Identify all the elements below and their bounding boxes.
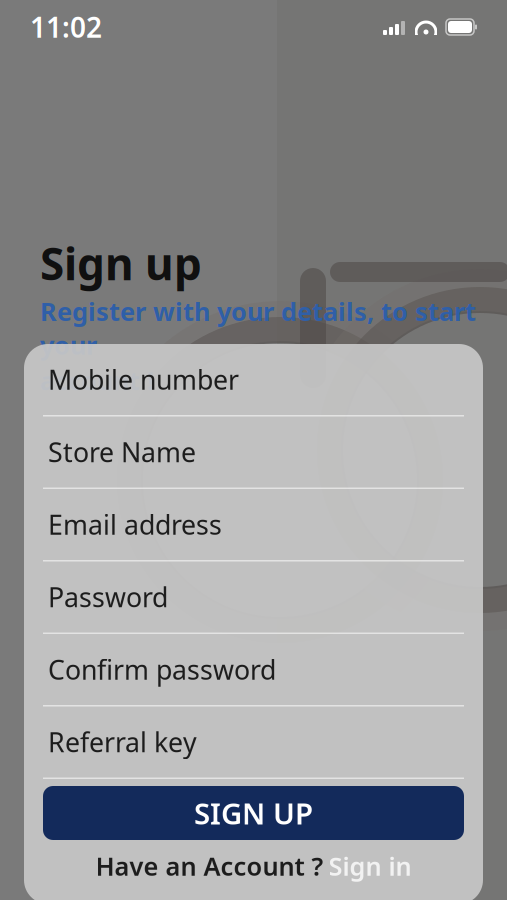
staticText: Password xyxy=(48,579,168,615)
staticText: account ! xyxy=(40,364,154,397)
button[interactable]: Referral key xyxy=(24,706,483,777)
button[interactable]: Password xyxy=(24,561,483,632)
button[interactable]: SIGN UP xyxy=(43,786,464,840)
staticText: Mobile number xyxy=(48,362,239,397)
button[interactable]: Have an Account ? xyxy=(43,849,464,883)
staticText: 11:02 xyxy=(30,8,102,46)
staticText: Have an Account ? xyxy=(95,849,323,883)
staticText: SIGN UP xyxy=(194,793,313,832)
staticText: Email address xyxy=(48,507,222,542)
button[interactable]: Store Name xyxy=(24,416,483,487)
staticText: Confirm password xyxy=(48,652,276,687)
staticText: Referral key xyxy=(48,724,197,760)
button[interactable]: Mobile number xyxy=(24,344,483,415)
staticText: Store Name xyxy=(48,434,196,470)
button[interactable]: Confirm password xyxy=(24,634,483,705)
button[interactable]: Email address xyxy=(24,489,483,560)
staticText: Sign up xyxy=(40,234,202,292)
staticText: Register with your details, to start you… xyxy=(40,294,476,362)
staticText: Sign in xyxy=(328,849,411,883)
